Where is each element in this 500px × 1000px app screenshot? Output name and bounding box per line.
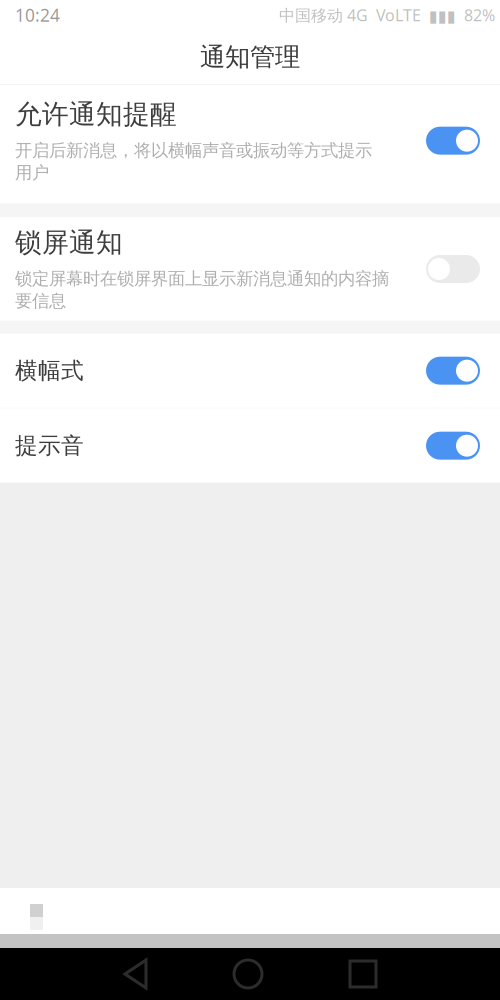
staticText: 用户 [15,162,49,183]
button[interactable]: 提示音 [0,409,500,483]
staticText: 锁定屏幕时在锁屏界面上显示新消息通知的内容摘 [15,268,389,289]
staticText: 要信息 [15,290,66,312]
button[interactable]: Home [190,948,310,1000]
button[interactable]: 横幅式 [0,334,500,408]
staticText: 开启后新消息，将以横幅声音或振动等方式提示 [15,140,372,161]
button[interactable]: Back [0,948,190,1000]
staticText: 中国移动 4G VoLTE ▮▮▮ 82% [279,4,495,26]
button[interactable]: 允许通知提醒 [0,85,500,203]
staticText: 允许通知提醒 [15,98,177,131]
staticText: 横幅式 [15,357,84,384]
staticText: 提示音 [15,432,84,459]
button[interactable]: 锁屏通知 [0,217,500,321]
staticText: 10:24 [15,3,60,26]
button[interactable]: Recents [310,948,500,1000]
staticText: 通知管理 [200,41,300,72]
button[interactable]: Home indicator [0,888,500,934]
staticText: 锁屏通知 [15,226,123,259]
